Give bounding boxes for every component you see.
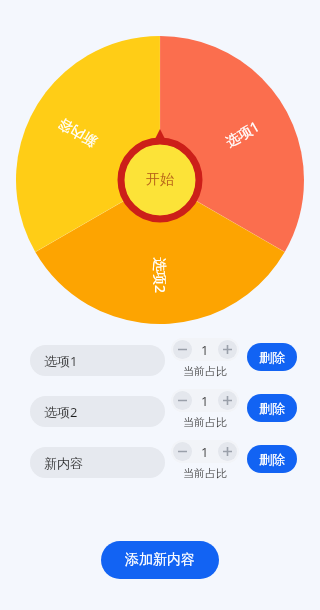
button[interactable]: 新内容	[30, 447, 165, 478]
staticText: 选项2	[151, 257, 170, 294]
staticText: 删除	[259, 400, 285, 416]
button[interactable]: 删除	[247, 343, 297, 371]
button[interactable]: 添加新内容	[101, 541, 219, 579]
staticText: 新内容	[44, 455, 83, 471]
staticText: 选项2	[44, 403, 78, 421]
button[interactable]: 删除	[247, 445, 297, 473]
staticText: 删除	[259, 349, 285, 365]
staticText: 当前占比	[183, 415, 227, 429]
button[interactable]: Increase	[218, 442, 237, 461]
button[interactable]: Decrease	[173, 340, 192, 359]
button[interactable]: 开始	[117, 137, 203, 223]
button[interactable]: Decrease	[173, 391, 192, 410]
staticText: 选项1	[44, 352, 78, 370]
button[interactable]: 选项1	[30, 345, 165, 376]
button[interactable]: 选项2	[30, 396, 165, 427]
staticText: 添加新内容	[125, 551, 195, 569]
staticText: 开始	[146, 171, 174, 189]
staticText: 新内容	[55, 114, 101, 150]
button[interactable]: Decrease	[173, 442, 192, 461]
button[interactable]: Increase	[218, 391, 237, 410]
staticText: 删除	[259, 451, 285, 467]
staticText: 1	[201, 341, 209, 359]
staticText: 选项1	[222, 116, 263, 151]
staticText: 当前占比	[183, 364, 227, 378]
staticText: 1	[201, 443, 209, 461]
staticText: 1	[201, 392, 209, 410]
staticText: 当前占比	[183, 466, 227, 480]
button[interactable]: 删除	[247, 394, 297, 422]
button[interactable]: Increase	[218, 340, 237, 359]
